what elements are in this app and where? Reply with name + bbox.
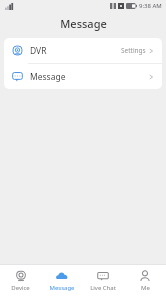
button[interactable]: Me [124, 265, 166, 296]
button[interactable]: DVR [4, 38, 162, 63]
staticText: Live Chat [90, 284, 116, 292]
staticText: 9:38 AM [139, 2, 162, 10]
staticText: Settings [121, 46, 146, 55]
button[interactable]: Message [41, 265, 82, 296]
staticText: Message [30, 71, 66, 83]
staticText: Message [49, 284, 75, 292]
staticText: DVR [30, 45, 47, 57]
staticText: Message [60, 16, 107, 31]
staticText: Me [141, 284, 150, 292]
button[interactable]: Device [0, 265, 41, 296]
button[interactable]: Live Chat [82, 265, 124, 296]
staticText: Device [11, 284, 30, 292]
button[interactable]: Message [4, 64, 162, 89]
